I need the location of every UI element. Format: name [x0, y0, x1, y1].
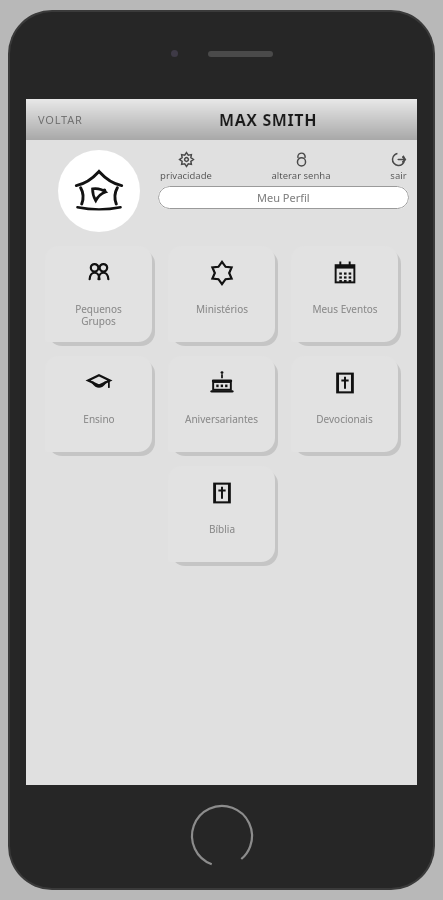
button[interactable]: Meu Perfil — [158, 186, 409, 209]
staticText: VOLTAR — [38, 112, 83, 127]
staticText: Meu Perfil — [257, 190, 310, 205]
button[interactable]: Meus Eventos — [291, 246, 398, 342]
staticText: Pequenos Grupos — [75, 302, 122, 328]
button[interactable]: Ministérios — [168, 246, 275, 342]
staticText: Ministérios — [196, 302, 248, 316]
staticText: Bíblia — [209, 522, 235, 536]
staticText: Meus Eventos — [312, 302, 378, 316]
staticText: Ensino — [83, 412, 115, 426]
button[interactable]: Ensino — [45, 356, 152, 452]
button[interactable]: Pequenos Grupos — [45, 246, 152, 342]
staticText: Devocionais — [316, 412, 373, 426]
staticText: Aniversariantes — [185, 412, 258, 426]
staticText: MAX SMITH — [219, 109, 318, 131]
button[interactable]: Bíblia — [168, 466, 275, 562]
button[interactable]: Foto do perfil — [58, 150, 140, 232]
staticText: sair — [390, 169, 407, 182]
staticText: alterar senha — [271, 169, 331, 182]
button[interactable]: VOLTAR — [26, 104, 95, 135]
staticText: privacidade — [160, 169, 212, 182]
button[interactable]: Aniversariantes — [168, 356, 275, 452]
button[interactable]: alterar senha — [269, 152, 333, 182]
button[interactable]: privacidade — [158, 152, 214, 182]
button[interactable]: Devocionais — [291, 356, 398, 452]
button[interactable]: sair — [388, 152, 409, 182]
